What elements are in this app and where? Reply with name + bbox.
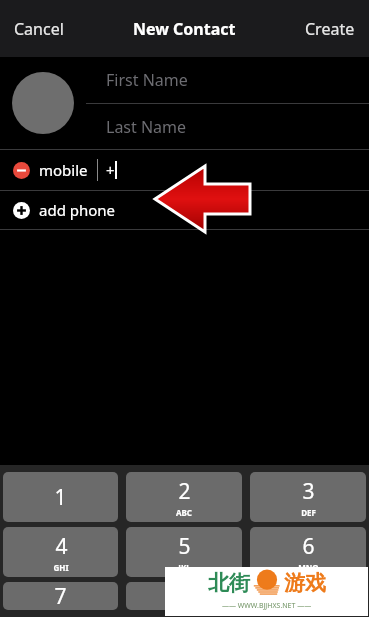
staticText: 1 bbox=[54, 483, 67, 512]
button[interactable]: Cancel bbox=[6, 12, 72, 46]
staticText: 6 bbox=[302, 532, 315, 561]
staticText: DEF bbox=[301, 507, 316, 518]
staticText: GHI bbox=[53, 562, 69, 573]
button[interactable]: 3 bbox=[250, 472, 366, 522]
button[interactable]: 6 bbox=[250, 527, 366, 577]
button[interactable]: 1 bbox=[3, 472, 118, 522]
staticText: 5 bbox=[178, 532, 191, 561]
staticText: 9 bbox=[302, 582, 315, 610]
staticText: —— WWW.BJJHXS.NET —— bbox=[222, 601, 312, 611]
staticText: 7 bbox=[54, 582, 67, 610]
staticText: 3 bbox=[302, 477, 315, 506]
staticText: add phone bbox=[39, 200, 116, 220]
button[interactable]: 9 bbox=[250, 582, 366, 610]
button[interactable]: First Name bbox=[86, 57, 369, 103]
button[interactable]: 2 bbox=[126, 472, 242, 522]
button[interactable]: 7 bbox=[3, 582, 118, 610]
staticText: Cancel bbox=[14, 18, 64, 40]
staticText: New Contact bbox=[133, 18, 236, 40]
button[interactable]: Last Name bbox=[86, 104, 369, 149]
staticText: First Name bbox=[106, 69, 188, 91]
button[interactable]: 8 bbox=[126, 582, 242, 610]
button[interactable]: Create bbox=[297, 12, 363, 46]
staticText: 2 bbox=[178, 477, 191, 506]
staticText: Last Name bbox=[106, 116, 187, 138]
staticText: Create bbox=[305, 18, 355, 40]
staticText: MNO bbox=[298, 562, 319, 573]
button[interactable]: add phone bbox=[0, 191, 369, 229]
staticText: ABC bbox=[176, 507, 192, 518]
staticText: mobile bbox=[39, 160, 88, 180]
staticText: + bbox=[106, 160, 115, 180]
staticText: 北街 bbox=[208, 570, 250, 596]
button[interactable]: Remove phone bbox=[0, 150, 369, 190]
button[interactable]: Remove phone bbox=[13, 162, 30, 179]
staticText: JKL bbox=[178, 562, 191, 573]
staticText: 4 bbox=[55, 532, 68, 561]
button[interactable]: 5 bbox=[126, 527, 242, 577]
staticText: 游戏 bbox=[284, 570, 326, 596]
button[interactable]: 4 bbox=[3, 527, 118, 577]
